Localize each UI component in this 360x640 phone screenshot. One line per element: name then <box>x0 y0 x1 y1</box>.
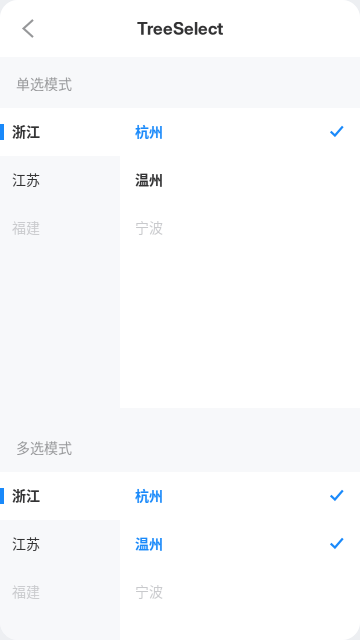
staticText: 江苏 <box>12 169 40 189</box>
staticText: 宁波 <box>135 217 163 237</box>
button[interactable]: 温州 <box>120 520 360 568</box>
button[interactable]: Back <box>0 0 62 56</box>
staticText: 单选模式 <box>16 73 72 93</box>
button[interactable]: 浙江 <box>0 108 120 156</box>
button[interactable]: 江苏 <box>0 156 120 204</box>
staticText: 福建 <box>12 217 40 237</box>
staticText: 多选模式 <box>16 437 72 457</box>
staticText: 江苏 <box>12 533 40 553</box>
button[interactable]: 福建 <box>0 568 120 616</box>
button[interactable]: 江苏 <box>0 520 120 568</box>
button[interactable]: 浙江 <box>0 472 120 520</box>
button[interactable]: 温州 <box>120 156 360 204</box>
staticText: 温州 <box>135 169 163 189</box>
button[interactable]: 宁波 <box>120 204 360 252</box>
button[interactable]: 福建 <box>0 204 120 252</box>
button[interactable]: 杭州 <box>120 108 360 156</box>
staticText: 浙江 <box>12 121 40 141</box>
button[interactable]: 杭州 <box>120 472 360 520</box>
staticText: TreeSelect <box>137 18 223 39</box>
staticText: 宁波 <box>135 581 163 601</box>
staticText: 福建 <box>12 581 40 601</box>
button[interactable]: 宁波 <box>120 568 360 616</box>
staticText: 浙江 <box>12 485 40 505</box>
staticText: 杭州 <box>135 121 163 141</box>
staticText: 杭州 <box>135 485 163 505</box>
staticText: 温州 <box>135 533 163 553</box>
